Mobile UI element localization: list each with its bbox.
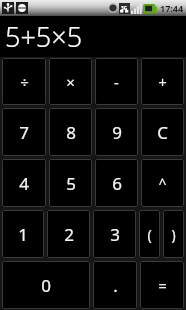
staticText: 7: [19, 121, 29, 144]
button[interactable]: (: [139, 210, 160, 258]
button[interactable]: ^: [141, 159, 184, 207]
button[interactable]: 4: [2, 159, 46, 207]
staticText: 6: [112, 172, 122, 195]
button[interactable]: 6: [95, 159, 138, 207]
staticText: +: [158, 72, 167, 92]
staticText: 0: [41, 274, 51, 297]
button[interactable]: =: [140, 261, 184, 309]
button[interactable]: ×: [49, 58, 92, 105]
staticText: =: [158, 275, 167, 295]
button[interactable]: +: [141, 58, 184, 105]
staticText: 3: [110, 223, 120, 246]
button[interactable]: 7: [2, 108, 46, 156]
button[interactable]: -: [95, 58, 138, 105]
staticText: 5: [66, 172, 76, 195]
staticText: ×: [66, 72, 75, 92]
staticText: 1: [18, 223, 28, 246]
staticText: (: [147, 225, 152, 244]
button[interactable]: 3: [93, 210, 136, 258]
button[interactable]: ): [163, 210, 184, 258]
button[interactable]: 2: [47, 210, 90, 258]
button[interactable]: .: [93, 261, 137, 309]
other: System notification: [16, 2, 28, 14]
staticText: 8: [66, 121, 76, 144]
button[interactable]: C: [141, 108, 184, 156]
staticText: 3G: [121, 5, 128, 12]
staticText: -: [114, 72, 119, 92]
staticText: .: [113, 274, 118, 297]
button[interactable]: 5: [49, 159, 92, 207]
button[interactable]: ÷: [2, 58, 46, 105]
staticText: 9: [112, 121, 122, 144]
staticText: 4: [19, 172, 29, 195]
staticText: 17:44: [160, 2, 184, 14]
button[interactable]: 0: [2, 261, 90, 309]
staticText: ): [171, 225, 176, 244]
staticText: ^: [158, 174, 167, 193]
staticText: 5+5×5: [5, 18, 83, 55]
staticText: ÷: [20, 72, 29, 92]
button[interactable]: 1: [2, 210, 44, 258]
other: USB connected: [2, 2, 14, 14]
button[interactable]: 9: [95, 108, 138, 156]
button[interactable]: 8: [49, 108, 92, 156]
staticText: 2: [64, 223, 74, 246]
staticText: C: [157, 121, 168, 144]
